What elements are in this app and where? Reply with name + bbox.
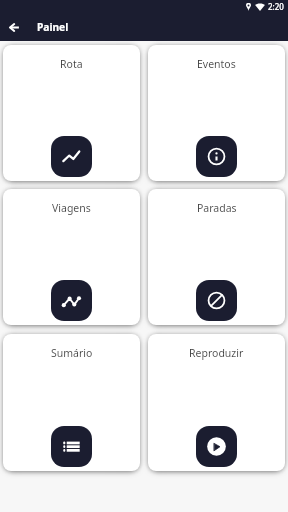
staticText: Viagens bbox=[52, 201, 91, 215]
staticText: Painel bbox=[37, 20, 69, 34]
staticText: 2:20 bbox=[268, 1, 284, 12]
button[interactable]: Back bbox=[0, 13, 28, 41]
staticText: Reproduzir bbox=[189, 346, 244, 360]
button[interactable]: Rota bbox=[3, 45, 140, 181]
button[interactable]: Paradas bbox=[148, 189, 285, 325]
button[interactable]: Eventos bbox=[148, 45, 285, 181]
button[interactable]: Sumário bbox=[3, 334, 140, 471]
staticText: Sumário bbox=[51, 346, 93, 360]
button[interactable]: Reproduzir bbox=[148, 334, 285, 471]
staticText: Rota bbox=[60, 57, 83, 71]
button[interactable]: Viagens bbox=[3, 189, 140, 325]
staticText: Paradas bbox=[197, 201, 237, 215]
staticText: Eventos bbox=[197, 57, 236, 71]
